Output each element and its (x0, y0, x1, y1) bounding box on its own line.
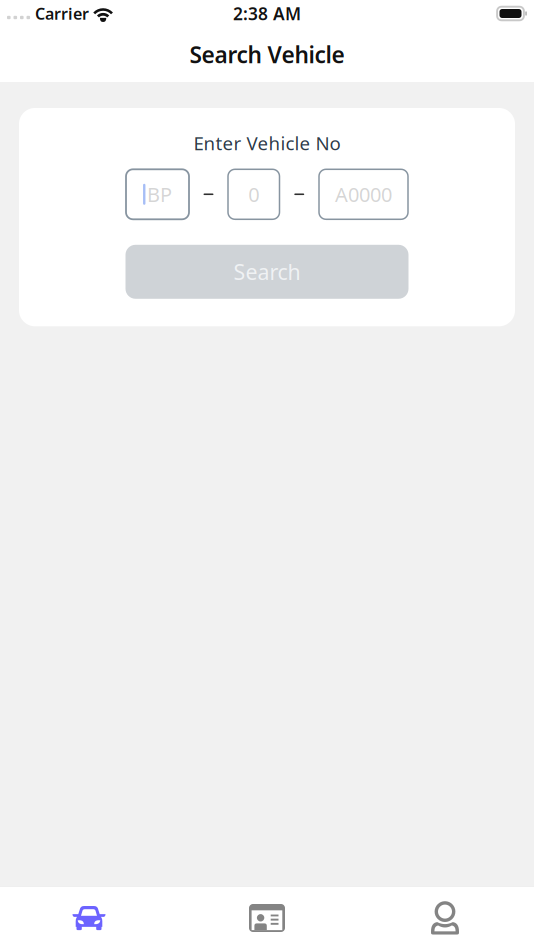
staticText: BP (147, 181, 172, 208)
button[interactable]: Search (125, 245, 408, 299)
staticText: 2:38 AM (233, 2, 301, 25)
button[interactable]: Vehicles (0, 886, 178, 950)
staticText: Search Vehicle (189, 39, 344, 69)
staticText: Search (233, 258, 300, 286)
button[interactable]: Profile (356, 886, 534, 950)
button[interactable]: Permits (178, 886, 356, 950)
staticText: Carrier (35, 3, 89, 24)
staticText: A0000 (335, 181, 392, 208)
staticText: 0 (248, 181, 259, 208)
staticText: Enter Vehicle No (193, 131, 340, 155)
